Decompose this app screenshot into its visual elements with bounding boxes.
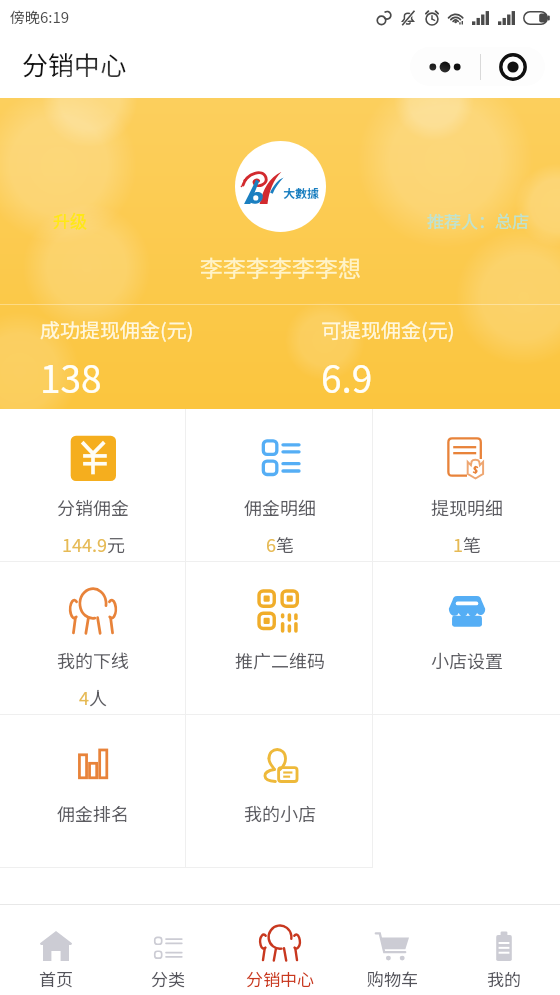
staticText: 6.9 [321,350,373,404]
staticText: 我的 [487,966,521,991]
button[interactable]: 升级 [53,208,87,233]
staticText: 佣金排名 [57,800,129,826]
button[interactable]: More options [410,47,480,86]
staticText: 成功提现佣金(元) [40,315,194,344]
button[interactable]: 分类 [112,905,224,995]
staticText: 佣金明细 [244,494,316,520]
button[interactable]: 提现明细 [373,409,560,562]
button[interactable]: 我的 [448,905,560,995]
staticText: 可提现佣金(元) [321,315,455,344]
button[interactable]: 购物车 [336,905,448,995]
staticText: 大數據 [283,184,320,201]
staticText: 小店设置 [431,647,503,673]
staticText: 李李李李李李想 [200,250,361,283]
button[interactable]: 分销佣金 [0,409,186,562]
button[interactable]: 我的小店 [186,715,373,868]
button[interactable]: Close mini program [481,47,545,86]
button[interactable]: 推广二维码 [186,562,373,715]
staticText: 推荐人：总店 [427,208,529,233]
staticText: 1笔 [453,531,481,557]
staticText: 分类 [151,966,185,991]
button[interactable]: 小店设置 [373,562,560,715]
button[interactable]: 我的下线 [0,562,186,715]
staticText: 分销佣金 [57,494,129,520]
staticText: 购物车 [367,966,418,991]
button[interactable]: 首页 [0,905,112,995]
staticText: 提现明细 [431,494,503,520]
staticText: 首页 [39,966,73,991]
staticText: 推广二维码 [235,647,325,673]
button[interactable]: Profile avatar [235,141,326,232]
button[interactable]: 佣金排名 [0,715,186,868]
staticText: 我的小店 [244,800,316,826]
staticText: 6笔 [266,531,294,557]
staticText: 分销中心 [246,966,314,991]
staticText: 138 [40,350,102,404]
staticText: 144.9元 [62,531,125,557]
button[interactable]: 佣金明细 [186,409,373,562]
staticText: 我的下线 [57,647,129,673]
staticText: 傍晚6:19 [10,6,70,28]
staticText: 分销中心 [22,45,127,83]
button[interactable]: 分销中心 [224,905,336,995]
staticText: 4人 [79,684,107,710]
